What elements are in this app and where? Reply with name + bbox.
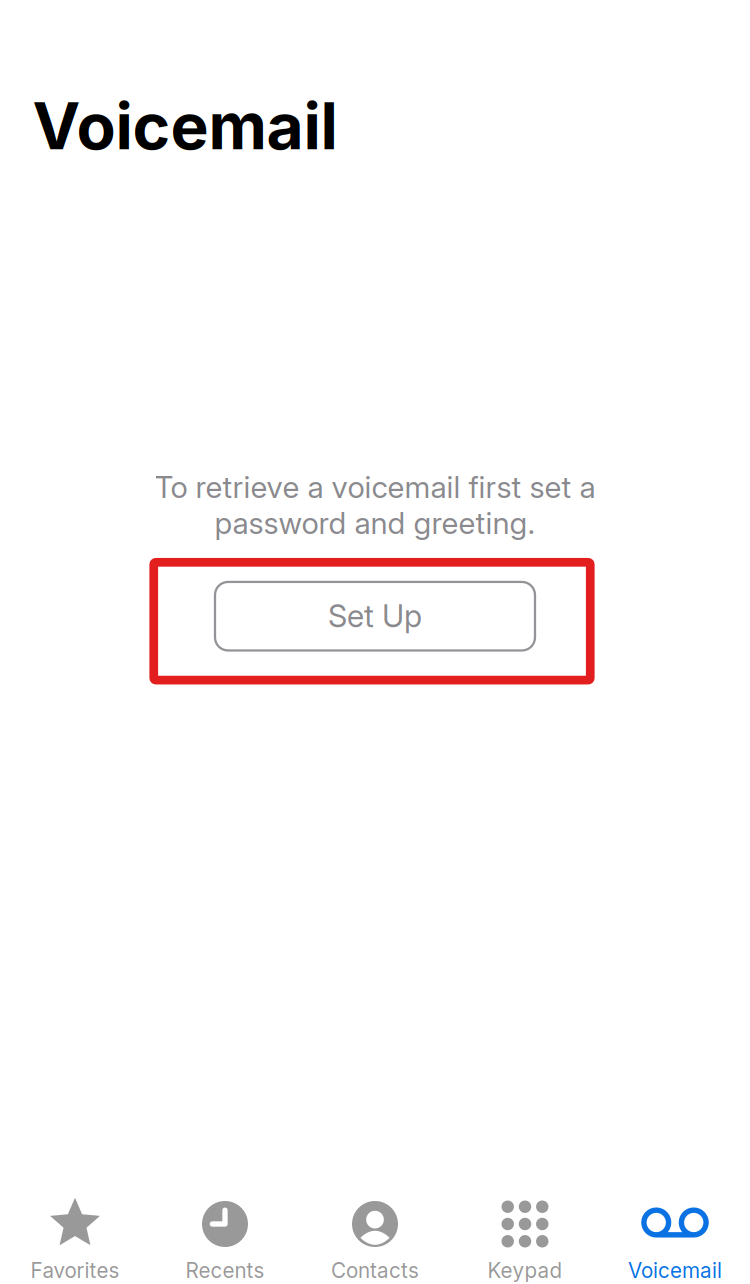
staticText: Contacts	[331, 1258, 419, 1283]
button[interactable]: Keypad	[450, 1196, 600, 1284]
button[interactable]: Contacts	[300, 1196, 450, 1284]
button[interactable]: Voicemail	[600, 1196, 750, 1284]
staticText: password and greeting.	[214, 505, 535, 541]
staticText: Voicemail	[628, 1258, 722, 1283]
staticText: Voicemail	[32, 87, 337, 165]
staticText: To retrieve a voicemail first set a	[154, 469, 595, 505]
staticText: Set Up	[328, 598, 422, 635]
staticText: Recents	[185, 1258, 264, 1283]
staticText: Keypad	[487, 1258, 562, 1283]
button[interactable]: Recents	[150, 1196, 300, 1284]
button[interactable]: Set Up	[215, 582, 535, 650]
staticText: Favorites	[30, 1258, 119, 1283]
button[interactable]: Favorites	[0, 1196, 150, 1284]
